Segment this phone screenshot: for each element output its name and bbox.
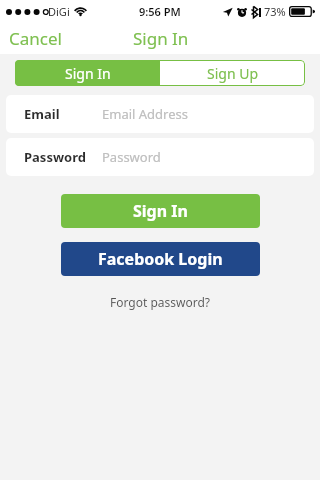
staticText: DiGi xyxy=(48,4,70,19)
staticText: Password xyxy=(24,148,86,166)
staticText: 73% xyxy=(264,4,286,19)
button[interactable]: Sign In xyxy=(61,194,260,228)
staticText: Cancel xyxy=(9,27,62,50)
staticText: Password xyxy=(102,148,161,166)
button[interactable]: Facebook Login xyxy=(61,242,260,276)
staticText: Email Address xyxy=(102,105,188,123)
button[interactable]: Forgot password? xyxy=(0,292,320,312)
staticText: Email xyxy=(24,105,60,123)
button[interactable]: Email xyxy=(6,95,314,133)
staticText: Sign In xyxy=(65,64,111,83)
staticText: Sign Up xyxy=(207,64,259,83)
staticText: Forgot password? xyxy=(110,294,211,310)
button[interactable]: Cancel xyxy=(0,22,88,54)
staticText: 9:56 PM xyxy=(139,4,181,19)
staticText: Sign In xyxy=(133,200,188,222)
staticText: Facebook Login xyxy=(98,248,223,270)
button[interactable]: Sign Up xyxy=(160,60,305,86)
staticText: Sign In xyxy=(133,27,189,50)
button[interactable]: Sign In xyxy=(15,60,160,86)
button[interactable]: Password xyxy=(6,138,314,176)
